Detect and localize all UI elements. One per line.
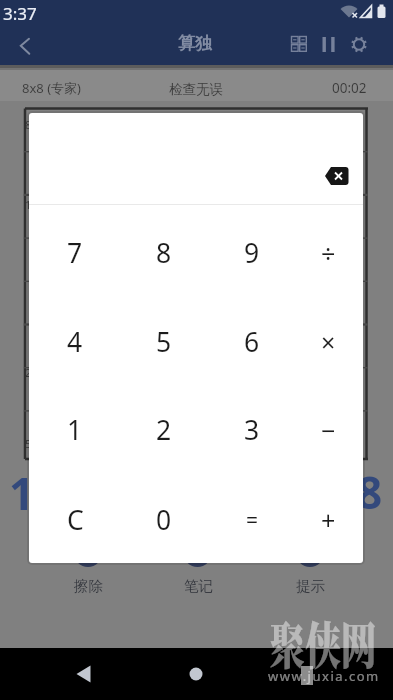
staticText: = [246, 506, 259, 535]
staticText: 1 [25, 197, 32, 212]
button[interactable]: 4 [39, 306, 111, 378]
staticText: 算独 [178, 33, 212, 54]
button[interactable] [278, 23, 320, 65]
staticText: 聚侠网 [269, 608, 377, 678]
button[interactable]: C [39, 484, 111, 556]
button[interactable]: − [292, 394, 363, 466]
staticText: 3:37 [3, 2, 37, 25]
staticText: 5 [156, 324, 172, 360]
staticText: 8x8 (专家) [22, 79, 81, 97]
staticText: + [321, 503, 336, 537]
button[interactable] [282, 652, 332, 696]
staticText: 笔记 [184, 577, 213, 595]
button[interactable]: 2 [128, 394, 200, 466]
staticText: 提示 [296, 577, 325, 595]
button[interactable]: 9 [216, 217, 288, 289]
staticText: 1 [67, 412, 83, 448]
staticText: 6 [244, 324, 260, 360]
staticText: 8 [156, 235, 172, 271]
staticText: 2 [25, 365, 32, 380]
staticText: 检查无误 [169, 81, 223, 98]
button[interactable]: 6 [216, 306, 288, 378]
button[interactable]: ÷ [292, 217, 363, 289]
staticText: 擦除 [74, 577, 103, 595]
button[interactable] [60, 652, 110, 696]
staticText: 0 [156, 502, 172, 538]
staticText: 8 [357, 462, 383, 522]
staticText: www.juxia.com [268, 667, 380, 685]
button[interactable] [340, 23, 380, 65]
staticText: C [67, 502, 84, 538]
button[interactable]: 擦除 [0, 556, 188, 616]
staticText: 1 [9, 463, 35, 523]
button[interactable] [310, 23, 348, 65]
staticText: 4 [67, 324, 83, 360]
button[interactable]: 提示 [210, 556, 393, 616]
button[interactable]: = [216, 484, 288, 556]
button[interactable] [171, 652, 221, 696]
button[interactable]: 7 [39, 217, 111, 289]
staticText: 00:02 [332, 79, 367, 97]
staticText: 7 [67, 235, 83, 271]
button[interactable]: 8 [128, 217, 200, 289]
button[interactable]: 1 [39, 394, 111, 466]
button[interactable]: 5 [128, 306, 200, 378]
button[interactable] [317, 157, 357, 195]
button[interactable]: 3 [216, 394, 288, 466]
staticText: 2 [156, 412, 172, 448]
staticText: × [321, 325, 336, 359]
button[interactable]: + [292, 484, 363, 556]
button[interactable] [6, 27, 48, 69]
staticText: ÷ [321, 236, 336, 270]
button[interactable]: 0 [128, 484, 200, 556]
staticText: 9 [244, 235, 260, 271]
staticText: 8 [25, 117, 32, 132]
button[interactable]: 笔记 [98, 556, 298, 616]
staticText: 3 [244, 412, 260, 448]
button[interactable]: × [292, 306, 363, 378]
staticText: − [321, 413, 336, 447]
staticText: 5 [25, 436, 32, 451]
